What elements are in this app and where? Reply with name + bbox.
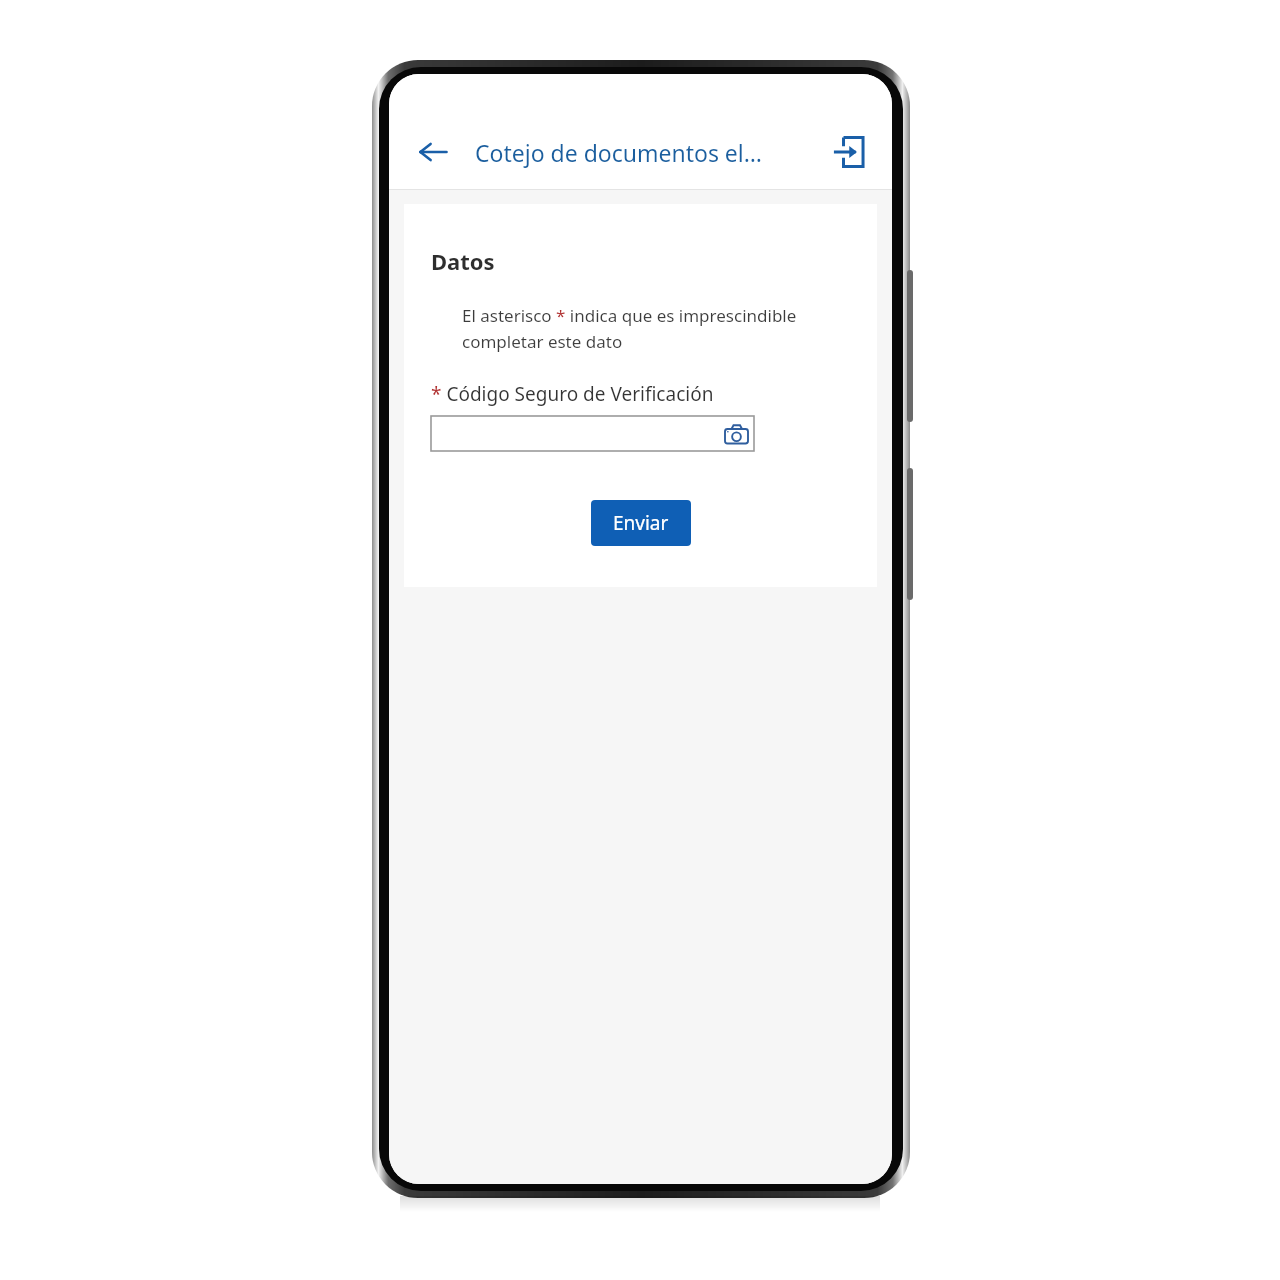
- staticText: Enviar: [613, 510, 669, 536]
- button[interactable]: Log in: [824, 128, 872, 176]
- staticText: Datos: [431, 246, 495, 276]
- button[interactable]: Enviar: [591, 500, 691, 546]
- staticText: Cotejo de documentos el…: [475, 137, 762, 168]
- button[interactable]: Scan code with camera: [431, 416, 754, 451]
- staticText: * Código Seguro de Verificación: [431, 381, 714, 407]
- button[interactable]: Back: [409, 128, 457, 176]
- button[interactable]: Scan code with camera: [721, 419, 751, 449]
- staticText: El asterisco * indica que es imprescindi…: [462, 304, 839, 353]
